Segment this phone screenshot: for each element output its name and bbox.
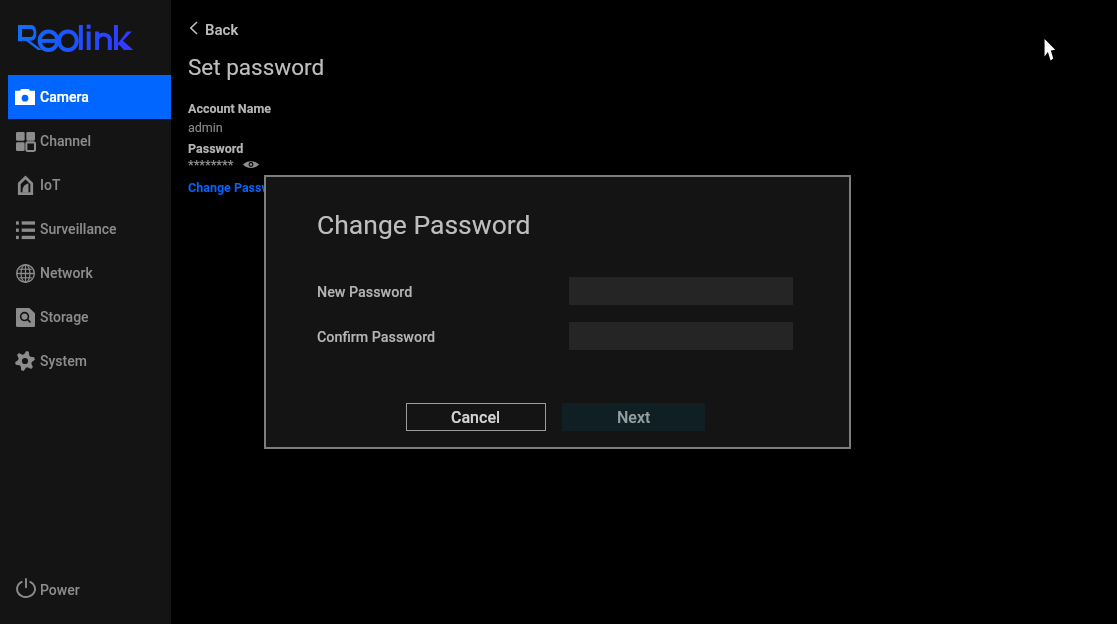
button[interactable]: System xyxy=(8,339,171,383)
button[interactable]: Next xyxy=(562,403,705,431)
staticText: Next xyxy=(617,408,651,427)
staticText: Storage xyxy=(40,309,89,325)
button[interactable]: Channel xyxy=(8,119,171,163)
button[interactable]: Cancel xyxy=(406,403,546,431)
staticText: Password xyxy=(188,141,244,156)
button[interactable]: Storage xyxy=(8,295,171,339)
staticText: Surveillance xyxy=(40,221,117,237)
button[interactable]: Show password xyxy=(243,160,259,169)
staticText: admin xyxy=(188,120,223,135)
staticText: Set password xyxy=(188,54,325,80)
button[interactable]: Surveillance xyxy=(8,207,171,251)
button[interactable]: Camera xyxy=(8,75,171,119)
staticText: ******** xyxy=(188,157,234,172)
staticText: Change Password xyxy=(188,180,290,195)
button[interactable]: Power xyxy=(16,578,80,598)
staticText: Power xyxy=(40,582,80,598)
staticText: Channel xyxy=(40,133,92,149)
staticText: Confirm Password xyxy=(317,329,436,346)
staticText: Camera xyxy=(40,89,89,105)
staticText: Cancel xyxy=(451,408,501,427)
button[interactable]: IoT xyxy=(8,163,171,207)
staticText: System xyxy=(40,353,87,369)
staticText: New Password xyxy=(317,284,413,301)
button[interactable]: Change Password xyxy=(188,180,290,195)
button[interactable]: Back xyxy=(190,21,239,35)
staticText: Back xyxy=(205,21,239,35)
staticText: Network xyxy=(40,265,93,281)
button[interactable]: Network xyxy=(8,251,171,295)
staticText: IoT xyxy=(40,177,61,193)
other: Reolink xyxy=(18,25,133,50)
staticText: Change Password xyxy=(317,209,531,240)
staticText: Account Name xyxy=(188,101,271,116)
